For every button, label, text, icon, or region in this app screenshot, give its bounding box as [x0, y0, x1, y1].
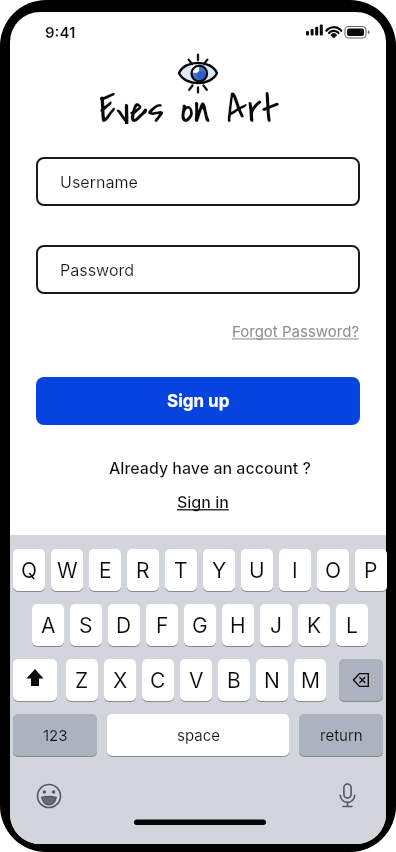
staticText: Username	[60, 172, 138, 191]
button[interactable]: space	[107, 714, 289, 756]
staticText: R	[136, 558, 150, 583]
button[interactable]: B	[218, 659, 250, 701]
staticText: Password	[60, 260, 135, 279]
staticText: S	[79, 613, 93, 638]
button[interactable]: Q	[13, 549, 45, 591]
staticText: E	[99, 558, 112, 583]
staticText: A	[41, 613, 56, 638]
staticText: P	[364, 558, 378, 583]
staticText: K	[307, 613, 322, 638]
staticText: Already have an account ?	[109, 458, 311, 477]
staticText: L	[346, 613, 358, 638]
button[interactable]: F	[146, 604, 178, 646]
button[interactable]: A	[32, 604, 64, 646]
button[interactable]: C	[142, 659, 174, 701]
staticText: Z	[75, 668, 89, 693]
button[interactable]: 123	[13, 714, 97, 756]
staticText: H	[230, 613, 246, 638]
staticText: N	[264, 668, 280, 693]
button[interactable]	[334, 783, 360, 809]
staticText: return	[320, 726, 363, 744]
staticText: B	[227, 668, 241, 693]
staticText: Y	[212, 558, 227, 583]
staticText: U	[249, 558, 265, 583]
button[interactable]: L	[336, 604, 368, 646]
button[interactable]: K	[298, 604, 330, 646]
staticText: G	[192, 613, 208, 638]
button[interactable]: Forgot Password?	[160, 321, 360, 341]
button[interactable]	[339, 659, 383, 701]
staticText: Forgot Password?	[232, 322, 360, 340]
staticText: M	[301, 668, 320, 693]
staticText: W	[57, 558, 78, 583]
staticText: V	[189, 668, 204, 693]
button[interactable]: X	[104, 659, 136, 701]
button[interactable]: Sign in	[41, 491, 365, 511]
staticText: X	[113, 668, 128, 693]
button[interactable]: J	[260, 604, 292, 646]
button[interactable]: G	[184, 604, 216, 646]
button[interactable]: Z	[66, 659, 98, 701]
staticText: I	[292, 558, 298, 583]
button[interactable]: S	[70, 604, 102, 646]
staticText: Q	[21, 558, 38, 583]
staticText: Eyes on Art	[99, 82, 280, 124]
button[interactable]: W	[51, 549, 83, 591]
button[interactable]: Y	[203, 549, 235, 591]
button[interactable]: I	[279, 549, 311, 591]
button[interactable]: N	[256, 659, 288, 701]
button[interactable]: Sign up	[36, 377, 360, 425]
staticText: Sign in	[177, 492, 229, 511]
button[interactable]: P	[355, 549, 387, 591]
staticText: 123	[43, 726, 68, 744]
button[interactable]: R	[127, 549, 159, 591]
button[interactable]	[36, 783, 62, 809]
button[interactable]: M	[294, 659, 326, 701]
button[interactable]: return	[299, 714, 383, 756]
button[interactable]	[13, 659, 57, 701]
button[interactable]: Password	[36, 245, 360, 294]
staticText: space	[177, 726, 220, 744]
button[interactable]: Username	[36, 157, 360, 206]
staticText: D	[116, 613, 132, 638]
staticText: 9:41	[45, 23, 76, 41]
button[interactable]: E	[89, 549, 121, 591]
staticText: F	[156, 613, 169, 638]
button[interactable]: D	[108, 604, 140, 646]
staticText: J	[270, 613, 282, 638]
staticText: T	[174, 558, 188, 583]
button[interactable]: O	[317, 549, 349, 591]
button[interactable]: U	[241, 549, 273, 591]
button[interactable]: T	[165, 549, 197, 591]
staticText: O	[325, 558, 342, 583]
staticText: C	[150, 668, 166, 693]
button[interactable]: H	[222, 604, 254, 646]
staticText: Sign up	[167, 391, 230, 412]
button[interactable]: V	[180, 659, 212, 701]
